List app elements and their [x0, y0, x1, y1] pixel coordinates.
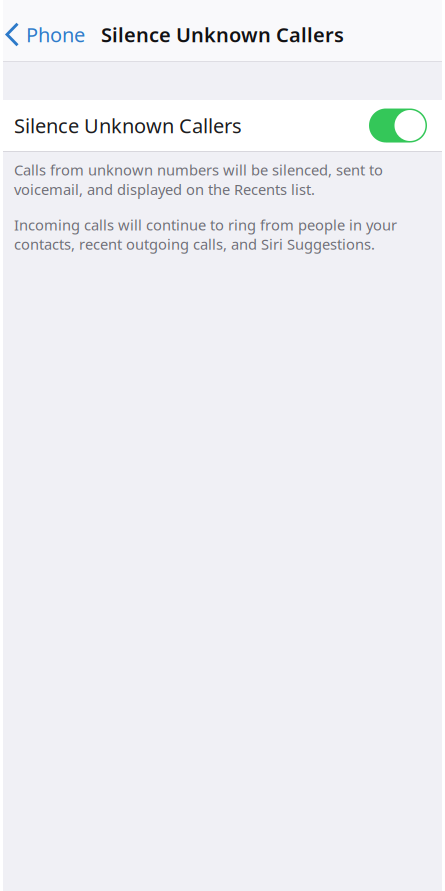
staticText: Phone — [26, 21, 85, 48]
button[interactable]: Silence Unknown Callers, on — [369, 108, 427, 142]
staticText: Silence Unknown Callers — [101, 21, 344, 48]
staticText: Silence Unknown Callers — [14, 112, 242, 139]
button[interactable]: Phone — [0, 12, 95, 57]
staticText: Calls from unknown numbers will be silen… — [14, 160, 383, 199]
staticText: Incoming calls will continue to ring fro… — [14, 215, 397, 254]
